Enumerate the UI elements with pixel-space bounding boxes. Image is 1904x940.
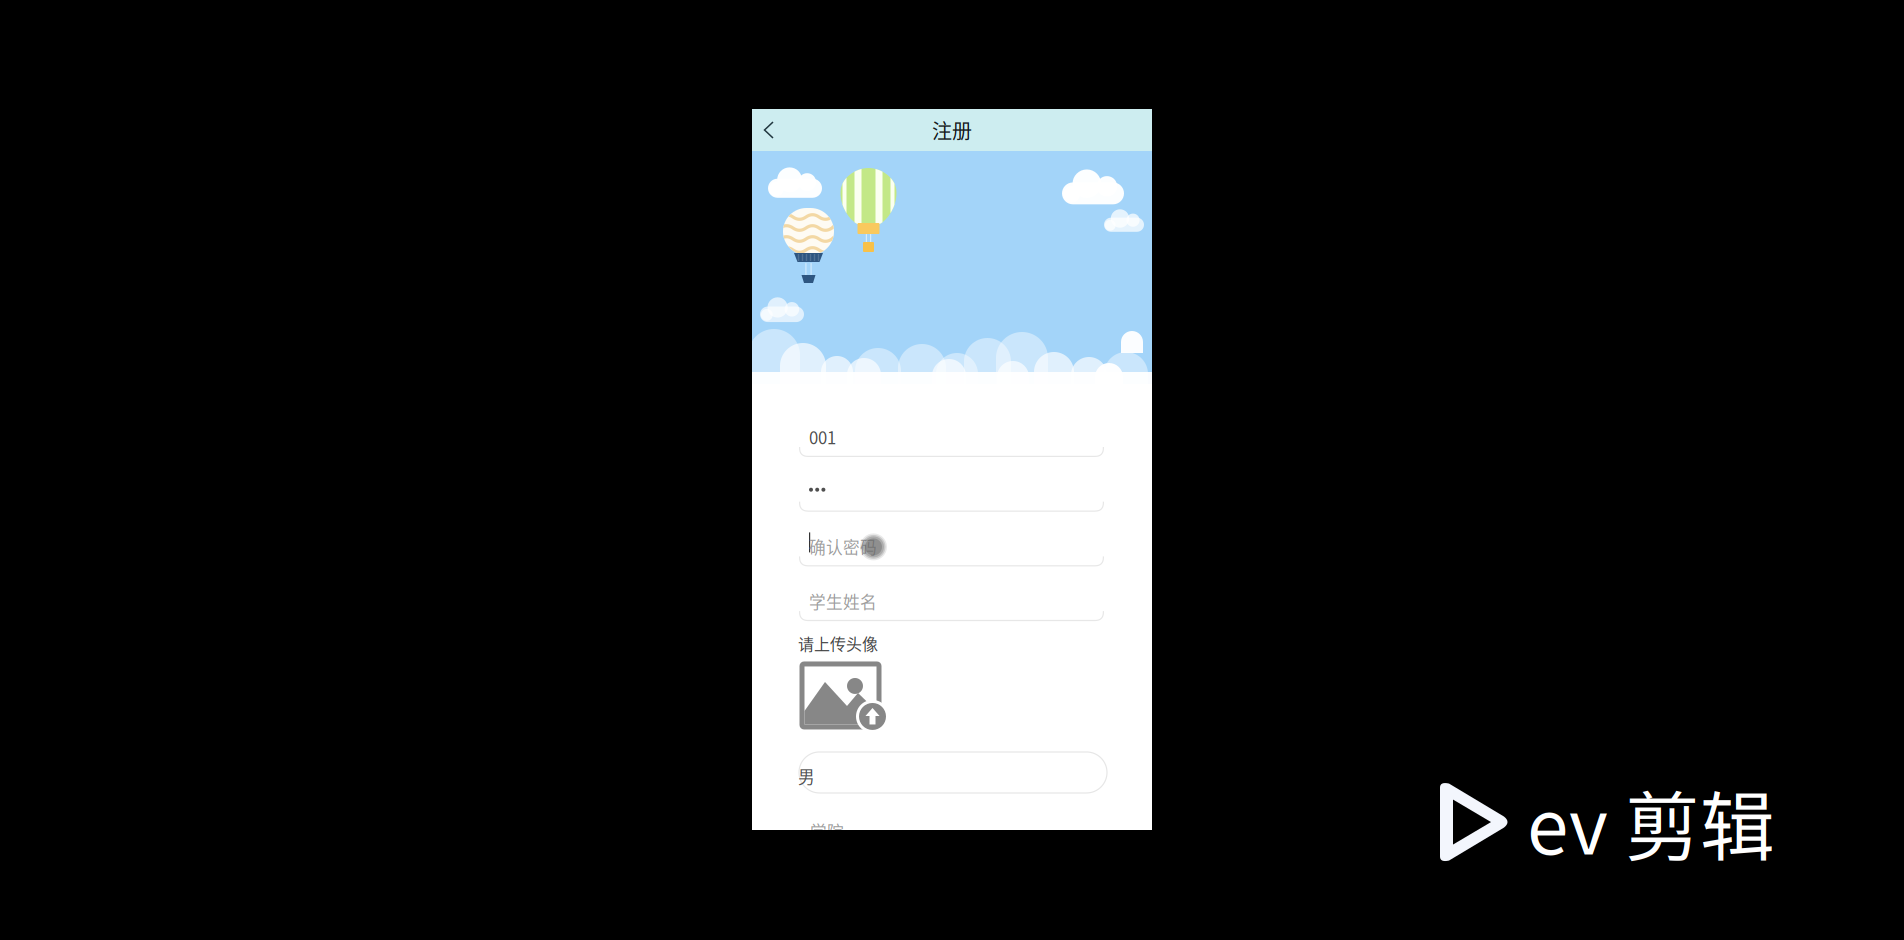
staticText: 001	[809, 425, 836, 449]
staticText: 男	[798, 764, 815, 788]
button[interactable]: 学生姓名	[799, 586, 1099, 641]
button[interactable]: 确认密码	[799, 531, 1099, 586]
button[interactable]: 返回	[752, 109, 786, 151]
staticText: 确认密码	[809, 534, 877, 558]
staticText: 学生姓名	[809, 589, 877, 613]
button[interactable]	[799, 477, 1099, 531]
staticText: 注册	[932, 115, 972, 144]
staticText: ev 剪辑	[1527, 768, 1775, 876]
staticText: 请上传头像	[798, 632, 878, 655]
button[interactable]: 001	[799, 422, 1099, 477]
button[interactable]: 男	[799, 752, 1099, 793]
button[interactable]: 上传头像	[799, 664, 886, 733]
staticText: 学院	[810, 819, 844, 843]
